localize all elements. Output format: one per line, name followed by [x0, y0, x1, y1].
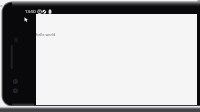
staticText: hello world — [36, 32, 56, 37]
staticText: = dep — [0, 3, 13, 9]
staticText: 13:50 — [25, 9, 36, 15]
